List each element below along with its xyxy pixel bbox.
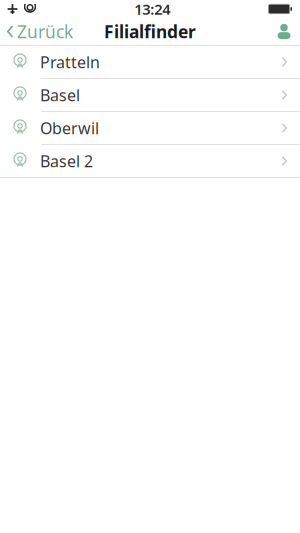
button[interactable]: Zurück — [0, 17, 81, 45]
staticText: Filialfinder — [104, 20, 196, 43]
staticText: Pratteln — [40, 51, 100, 73]
staticText: Zurück — [17, 20, 73, 43]
button[interactable]: Basel 2 — [0, 145, 300, 178]
button[interactable]: Basel — [0, 79, 300, 112]
staticText: 13:24 — [134, 0, 170, 19]
staticText: Oberwil — [40, 117, 99, 139]
button[interactable]: Pratteln — [0, 46, 300, 79]
button[interactable]: Oberwil — [0, 112, 300, 145]
staticText: Basel 2 — [40, 150, 93, 172]
button[interactable]: Profil — [269, 17, 300, 45]
staticText: Basel — [40, 84, 80, 106]
